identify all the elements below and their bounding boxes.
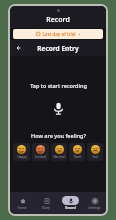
button[interactable]: Back — [13, 42, 25, 54]
staticText: Neutral — [53, 155, 65, 159]
staticText: Happy — [17, 155, 27, 159]
button[interactable]: Neutral — [51, 143, 67, 161]
staticText: Tap to start recording — [30, 82, 87, 89]
button[interactable]: Tired — [69, 143, 85, 161]
button[interactable]: Sad — [87, 143, 103, 161]
staticText: Sad — [92, 155, 98, 159]
button[interactable]: Settings — [82, 192, 106, 214]
button[interactable]: Excited — [32, 143, 49, 161]
button[interactable]: Happy — [13, 143, 30, 161]
staticText: How are you feeling? — [31, 132, 86, 139]
staticText: Record — [65, 206, 76, 210]
staticText: Excited — [35, 155, 46, 159]
button[interactable]: Diary — [34, 192, 58, 214]
staticText: Tired — [73, 155, 81, 159]
staticText: Record Entry — [37, 44, 79, 53]
button[interactable]: Record — [58, 192, 82, 214]
staticText: Record — [46, 15, 70, 25]
button[interactable]: Last day of trial — [13, 29, 103, 39]
staticText: Last day of trial — [42, 31, 76, 37]
staticText: Home — [17, 206, 27, 210]
button[interactable]: Start recording — [48, 98, 68, 118]
button[interactable]: Home — [10, 192, 34, 214]
staticText: Settings — [88, 206, 101, 210]
staticText: Diary — [42, 206, 50, 210]
